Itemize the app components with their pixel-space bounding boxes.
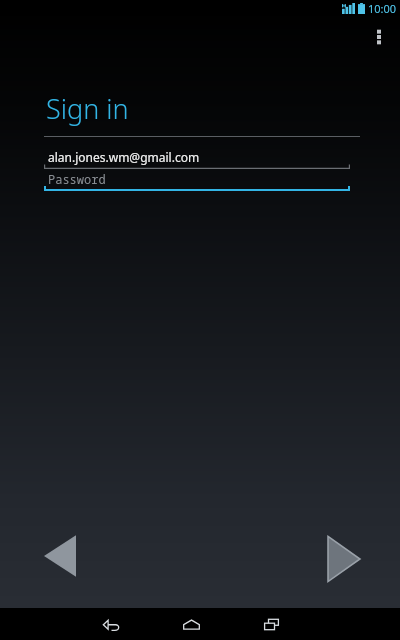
button[interactable]: Next — [314, 529, 374, 589]
staticText: Password — [48, 171, 106, 187]
button[interactable]: Home — [172, 608, 210, 640]
staticText: Sign in — [46, 90, 129, 127]
button[interactable]: Back — [92, 608, 130, 640]
staticText: alan.jones.wm@gmail.com — [48, 149, 200, 165]
button[interactable]: Password — [44, 169, 350, 191]
button[interactable]: Previous — [30, 526, 90, 586]
button[interactable]: Recent apps — [252, 608, 290, 640]
button[interactable]: alan.jones.wm@gmail.com — [44, 147, 350, 169]
staticText: 10:00 — [368, 1, 397, 16]
button[interactable]: More options — [362, 20, 396, 54]
